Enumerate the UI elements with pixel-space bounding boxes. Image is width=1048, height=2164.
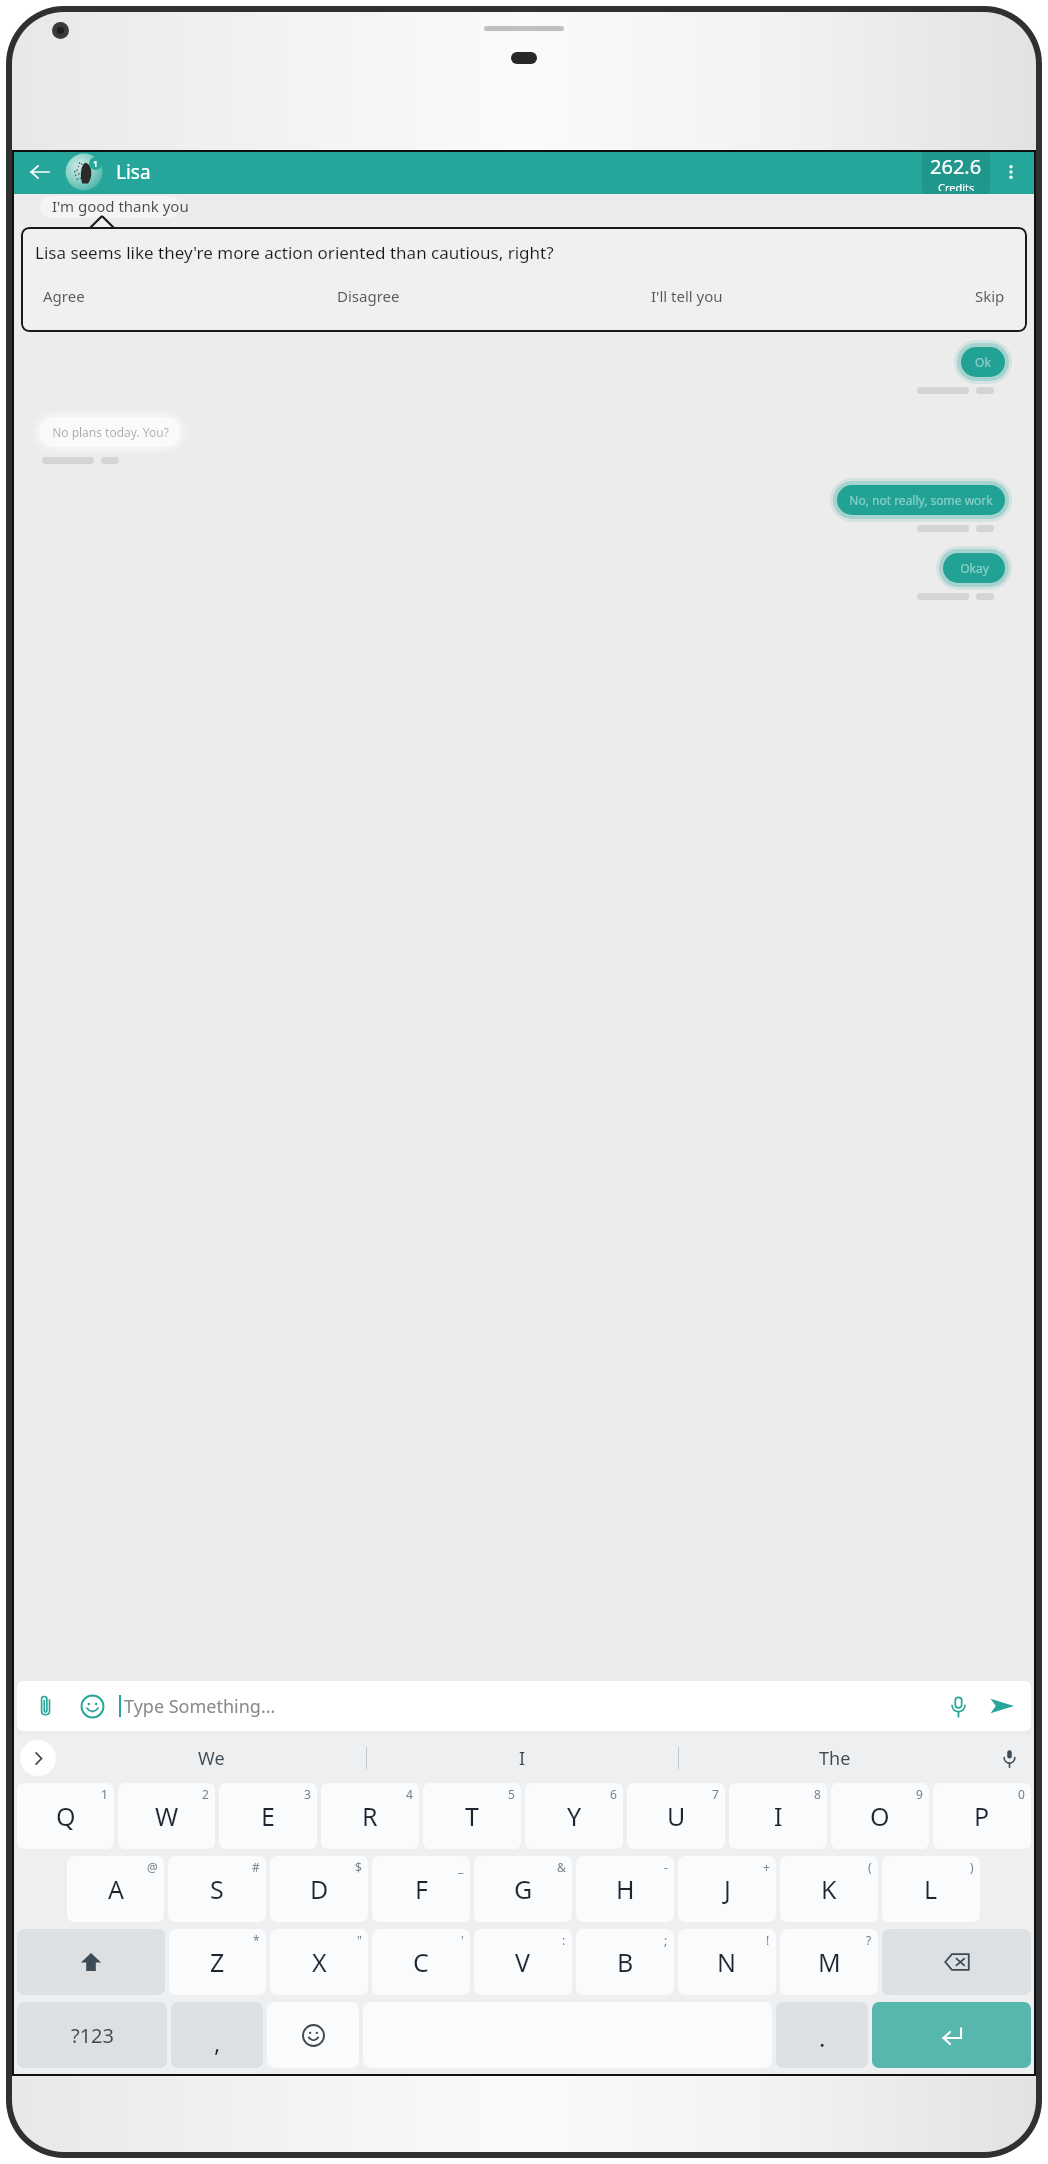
button[interactable]: A (67, 1856, 164, 1922)
button[interactable]: Ok (961, 347, 1005, 377)
staticText: K (821, 1872, 837, 1906)
staticText: 1 (93, 158, 98, 169)
button[interactable]: Agree (37, 282, 91, 310)
button[interactable]: 262.6 (922, 150, 990, 194)
button[interactable]: P (933, 1783, 1031, 1849)
button[interactable]: L (882, 1856, 980, 1922)
staticText: Skip (975, 286, 1005, 306)
staticText: R (362, 1799, 378, 1833)
button[interactable]: I (729, 1783, 827, 1849)
staticText: ; (664, 1932, 668, 1948)
staticText: M (818, 1945, 841, 1979)
staticText: Okay (960, 560, 989, 576)
staticText: W (155, 1799, 179, 1833)
staticText: Disagree (337, 286, 400, 306)
button[interactable]: Disagree (331, 282, 406, 310)
button[interactable]: More options (994, 155, 1028, 189)
staticText: 1 (101, 1786, 108, 1802)
button[interactable]: J (678, 1856, 776, 1922)
button[interactable]: Send (983, 1687, 1021, 1725)
button[interactable]: , (171, 2002, 263, 2068)
button[interactable]: T (423, 1783, 521, 1849)
button[interactable]: W (118, 1783, 215, 1849)
button[interactable]: No, not really, some work (837, 485, 1005, 515)
button[interactable]: We (56, 1735, 366, 1781)
button[interactable]: Emoji keyboard (267, 2002, 359, 2068)
button[interactable]: R (321, 1783, 419, 1849)
button[interactable]: M (780, 1929, 878, 1995)
staticText: Lisa seems like they're more action orie… (35, 241, 554, 264)
button[interactable]: Lisa seems like they're more action orie… (21, 227, 1027, 332)
staticText: Credits (938, 180, 975, 191)
staticText: P (974, 1799, 990, 1833)
staticText: N (717, 1945, 737, 1979)
staticText: H (616, 1872, 635, 1906)
staticText: 6 (610, 1786, 617, 1802)
staticText: Lisa (116, 159, 151, 185)
button[interactable]: N (678, 1929, 776, 1995)
staticText: A (108, 1872, 124, 1906)
button[interactable]: Q (17, 1783, 114, 1849)
staticText: Q (56, 1799, 76, 1833)
button[interactable]: H (576, 1856, 674, 1922)
staticText: D (310, 1872, 329, 1906)
button[interactable]: Profile photo (64, 152, 104, 192)
button[interactable]: E (219, 1783, 317, 1849)
staticText: No, not really, some work (849, 492, 993, 508)
button[interactable]: Emoji (73, 1687, 111, 1725)
button[interactable]: I (367, 1735, 678, 1781)
button[interactable]: Voice input (990, 1739, 1028, 1777)
button[interactable]: More suggestions (20, 1740, 56, 1776)
button[interactable]: O (831, 1783, 929, 1849)
button[interactable]: Shift (17, 1929, 165, 1995)
staticText: O (870, 1799, 890, 1833)
button[interactable]: Y (525, 1783, 623, 1849)
button[interactable]: F (372, 1856, 470, 1922)
button[interactable]: U (627, 1783, 725, 1849)
staticText: U (667, 1799, 686, 1833)
button[interactable]: Back (22, 154, 58, 190)
staticText: 8 (814, 1786, 821, 1802)
button[interactable]: S (168, 1856, 266, 1922)
button[interactable]: B (576, 1929, 674, 1995)
staticText: 262.6 (930, 153, 982, 180)
staticText: + (763, 1859, 770, 1875)
button[interactable]: ?123 (17, 2002, 167, 2068)
staticText: 0 (1018, 1786, 1025, 1802)
staticText: ' (461, 1932, 464, 1948)
button[interactable]: G (474, 1856, 572, 1922)
button[interactable]: Backspace (882, 1929, 1031, 1995)
staticText: * (253, 1932, 260, 1948)
button[interactable]: D (270, 1856, 368, 1922)
staticText: No plans today. You? (52, 424, 169, 440)
button[interactable]: The (679, 1735, 990, 1781)
staticText: ) (970, 1859, 974, 1875)
staticText: 7 (712, 1786, 719, 1802)
button[interactable]: C (372, 1929, 470, 1995)
button[interactable]: Attach file (27, 1687, 65, 1725)
staticText: We (198, 1746, 225, 1771)
staticText: L (924, 1872, 938, 1906)
staticText: " (357, 1932, 362, 1948)
button[interactable]: Okay (943, 553, 1005, 583)
button[interactable]: Z (169, 1929, 266, 1995)
button[interactable]: No plans today. You? (39, 417, 181, 447)
button[interactable]: I'll tell you (645, 282, 729, 310)
button[interactable]: Voice message (939, 1687, 977, 1725)
staticText: ?123 (71, 2022, 114, 2049)
button[interactable]: X (270, 1929, 368, 1995)
button[interactable]: Type Something... (124, 1694, 939, 1719)
button[interactable]: Enter (872, 2002, 1031, 2068)
staticText: J (724, 1872, 731, 1906)
staticText: $ (355, 1859, 362, 1875)
button[interactable]: V (474, 1929, 572, 1995)
button[interactable]: . (776, 2002, 868, 2068)
button[interactable]: K (780, 1856, 878, 1922)
staticText: 5 (508, 1786, 515, 1802)
button[interactable]: Skip (969, 282, 1011, 310)
staticText: ! (766, 1932, 770, 1948)
staticText: 4 (406, 1786, 413, 1802)
staticText: B (617, 1945, 634, 1979)
staticText: X (312, 1945, 327, 1979)
